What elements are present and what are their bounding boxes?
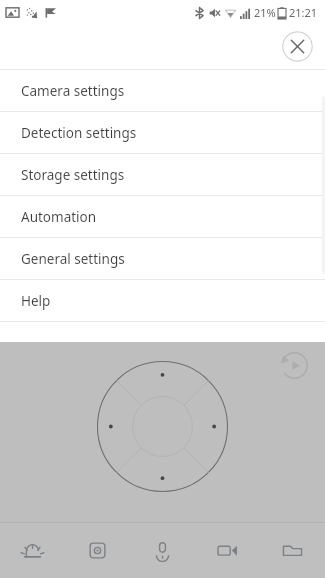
button[interactable]: Close <box>282 31 313 62</box>
button[interactable]: Reset camera position <box>280 351 309 380</box>
button[interactable]: Take snapshot <box>65 523 130 578</box>
staticText: Help <box>21 292 51 310</box>
button[interactable]: Help <box>0 280 325 321</box>
button[interactable]: Files <box>260 523 325 578</box>
button[interactable]: Detection settings <box>0 112 325 153</box>
staticText: Detection settings <box>21 124 137 142</box>
button[interactable]: Microphone <box>130 523 195 578</box>
staticText: Camera settings <box>21 82 125 100</box>
staticText: 21:21 <box>289 5 318 20</box>
button[interactable]: Record video <box>195 523 260 578</box>
button[interactable]: General settings <box>0 238 325 279</box>
button[interactable]: Storage settings <box>0 154 325 195</box>
staticText: 21% <box>254 5 276 20</box>
button[interactable]: Camera settings <box>0 70 325 111</box>
staticText: Automation <box>21 208 97 226</box>
staticText: General settings <box>21 250 125 268</box>
button[interactable]: Automation <box>0 196 325 237</box>
button[interactable]: Pan and tilt control <box>96 360 229 493</box>
button[interactable]: Alarm siren <box>0 523 65 578</box>
staticText: Storage settings <box>21 166 125 184</box>
